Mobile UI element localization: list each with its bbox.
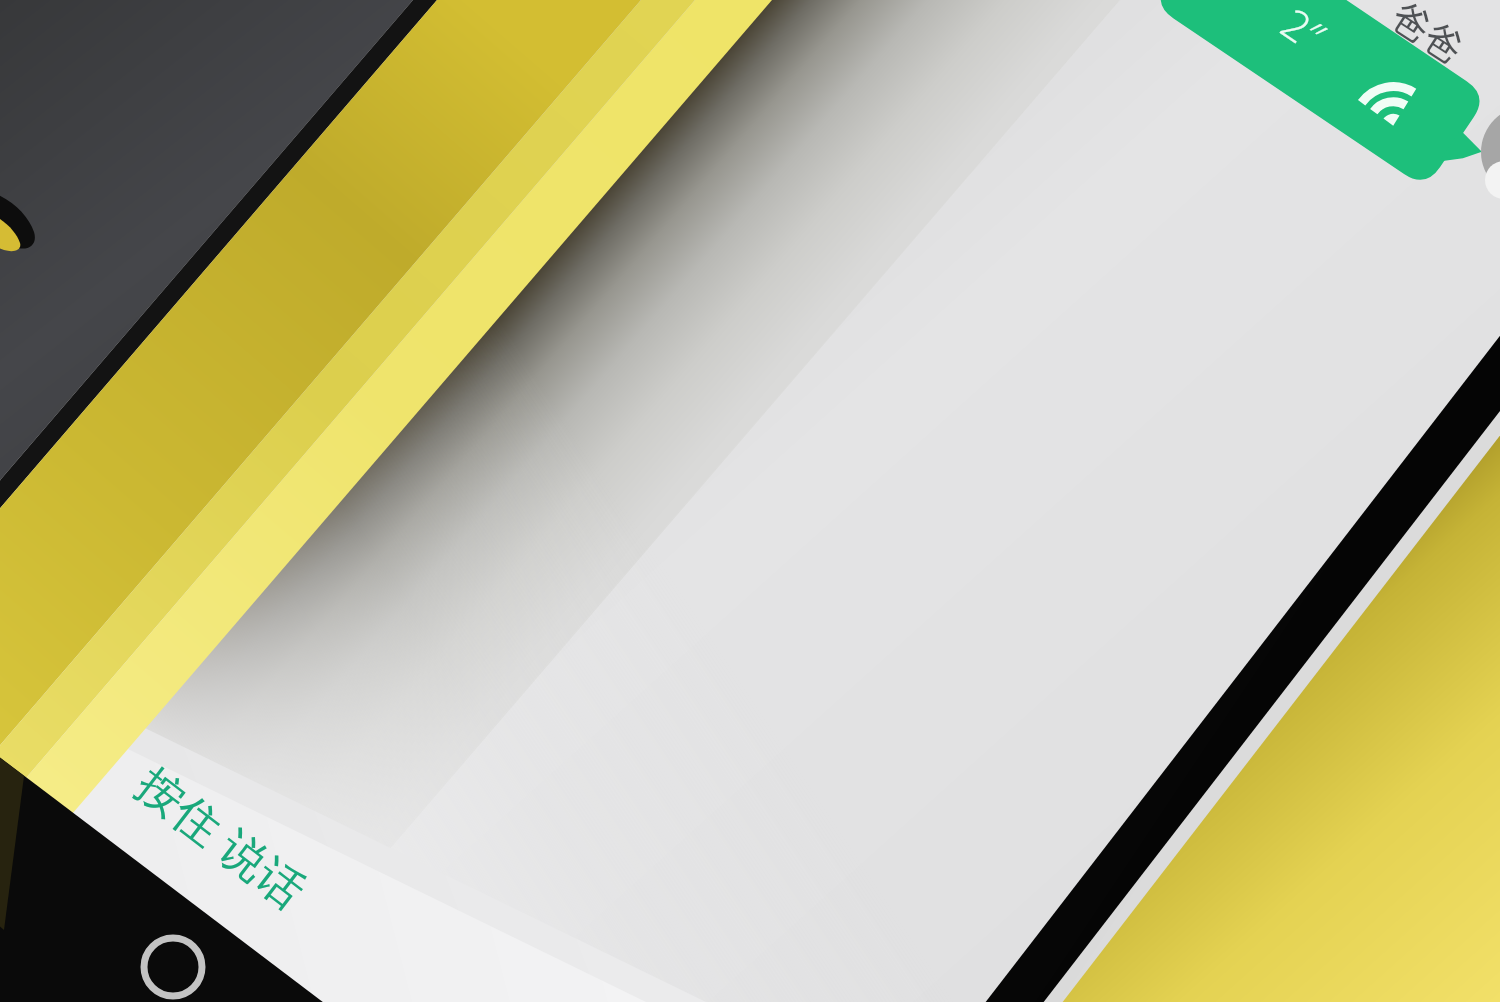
button[interactable]: WeChat voice message chat screen bbox=[0, 0, 1500, 1002]
